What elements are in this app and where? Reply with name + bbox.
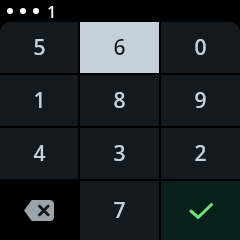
button[interactable]: Backspace [0,181,78,240]
button[interactable]: 3 [80,128,159,179]
staticText: 8 [113,86,126,115]
button[interactable]: Confirm [161,181,240,240]
button[interactable]: 6 [80,22,159,73]
staticText: 3 [113,139,126,168]
staticText: 2 [194,139,207,168]
button[interactable]: 7 [80,181,159,240]
button[interactable]: 1 [0,75,78,126]
button[interactable]: 5 [0,22,78,73]
staticText: 1 [33,86,46,115]
staticText: 1 [47,0,57,22]
staticText: 4 [33,139,46,168]
staticText: 0 [194,33,207,62]
button[interactable]: 0 [161,22,240,73]
staticText: 6 [113,33,126,62]
staticText: 7 [113,196,126,225]
button[interactable]: 9 [161,75,240,126]
staticText: 5 [33,33,46,62]
button[interactable]: 4 [0,128,78,179]
staticText: 9 [194,86,207,115]
button[interactable]: 2 [161,128,240,179]
button[interactable]: 8 [80,75,159,126]
